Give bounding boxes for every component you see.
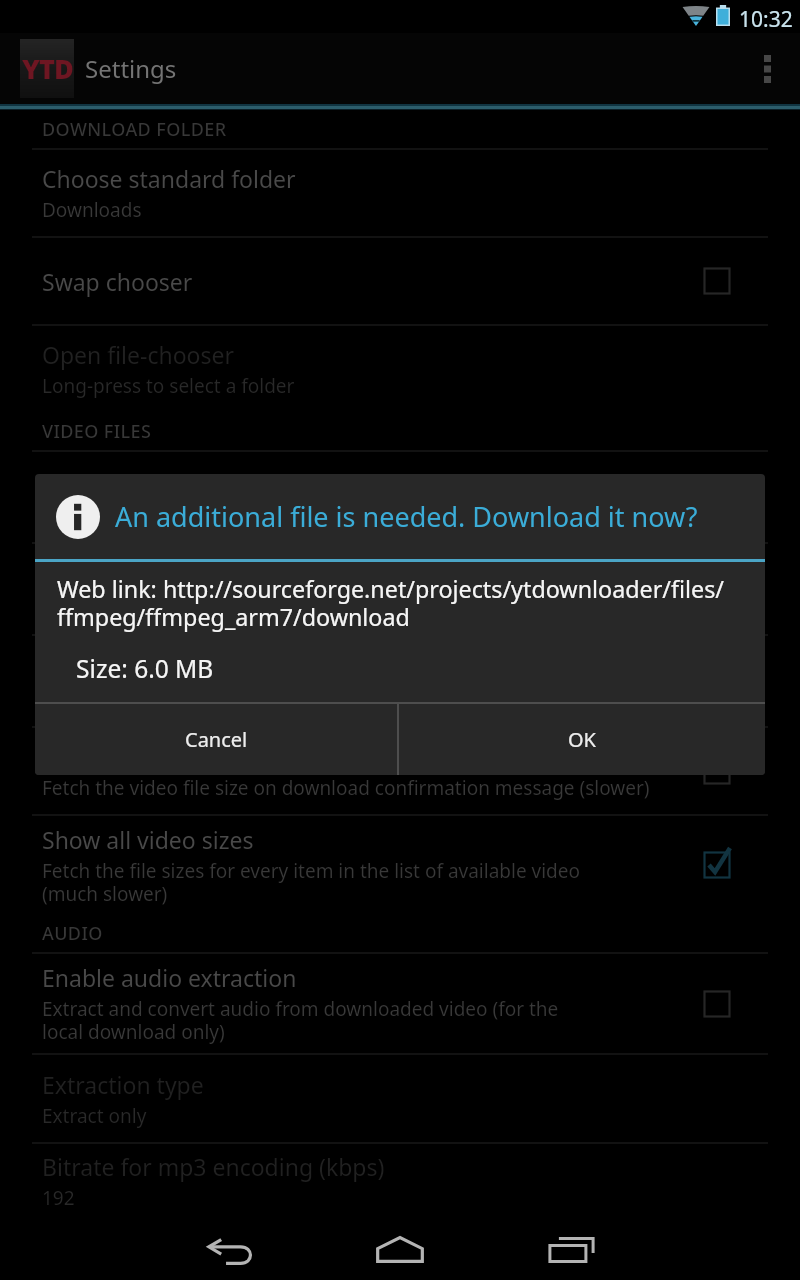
- button[interactable]: More options: [734, 33, 800, 104]
- staticText: Open file-chooser: [42, 339, 235, 370]
- staticText: Video file name: [42, 467, 210, 498]
- staticText: Cancel: [185, 726, 248, 753]
- button[interactable]: Enable audio extraction: [0, 954, 800, 1055]
- button[interactable]: Extraction type: [0, 1055, 800, 1144]
- staticText: 10:32: [739, 5, 793, 34]
- button[interactable]: Cancel: [35, 704, 397, 775]
- button[interactable]: Show video file size: [0, 728, 800, 816]
- staticText: Extract only: [42, 1103, 732, 1129]
- staticText: Web link: http://sourceforge.net/project…: [57, 573, 724, 633]
- button[interactable]: Open file-chooser: [0, 326, 800, 412]
- staticText: Size: 6.0 MB: [57, 652, 214, 685]
- staticText: AUDIO: [42, 921, 103, 946]
- button[interactable]: Preferred video quality: [0, 636, 800, 728]
- button[interactable]: Video file name: [0, 452, 800, 544]
- staticText: Extract and convert audio from downloade…: [42, 996, 591, 1045]
- staticText: Ask me: [42, 685, 732, 711]
- button[interactable]: Back: [170, 1218, 290, 1280]
- staticText: Fetch the video file size on download co…: [42, 775, 688, 801]
- button[interactable]: Recent apps: [511, 1218, 631, 1280]
- button[interactable]: Preferred video format: [0, 544, 800, 636]
- staticText: Ask me: [42, 593, 732, 619]
- staticText: Fetch the file sizes for every item in t…: [42, 858, 636, 907]
- staticText: Video title: [42, 501, 732, 527]
- staticText: Enable audio extraction: [42, 962, 297, 993]
- staticText: DOWNLOAD FOLDER: [42, 117, 227, 142]
- staticText: Preferred video quality: [42, 651, 289, 682]
- staticText: OK: [568, 726, 596, 753]
- staticText: VIDEO FILES: [42, 419, 152, 444]
- button[interactable]: Home: [340, 1218, 460, 1280]
- button[interactable]: Bitrate for mp3 encoding (kbps): [0, 1144, 800, 1218]
- staticText: An additional file is needed. Download i…: [115, 498, 698, 535]
- staticText: Bitrate for mp3 encoding (kbps): [42, 1151, 385, 1182]
- button[interactable]: Swap chooser: [0, 238, 800, 326]
- staticText: Choose standard folder: [42, 163, 296, 194]
- staticText: Long-press to select a folder: [42, 373, 732, 399]
- staticText: Settings: [85, 52, 177, 85]
- staticText: Show all video sizes: [42, 824, 254, 855]
- button[interactable]: Choose standard folder: [0, 150, 800, 238]
- button[interactable]: Show all video sizes: [0, 816, 800, 914]
- staticText: Show video file size: [42, 741, 251, 772]
- staticText: Downloads: [42, 197, 732, 223]
- staticText: Preferred video format: [42, 559, 290, 590]
- staticText: YTD: [22, 50, 73, 87]
- button[interactable]: OK: [399, 704, 765, 775]
- staticText: Swap chooser: [42, 266, 193, 297]
- staticText: Extraction type: [42, 1069, 204, 1100]
